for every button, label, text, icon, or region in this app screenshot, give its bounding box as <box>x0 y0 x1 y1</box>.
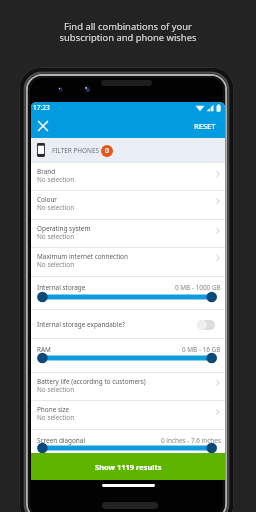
staticText: Maximum internet connection <box>37 252 128 261</box>
staticText: No selection <box>37 232 75 241</box>
button[interactable]: Brand <box>31 162 225 191</box>
staticText: Colour <box>37 195 58 204</box>
button[interactable]: Colour <box>31 190 225 218</box>
staticText: Phone size <box>37 405 70 414</box>
staticText: Find all combinations of your subscripti… <box>0 20 256 43</box>
button[interactable]: FILTER PHONES <box>31 138 225 162</box>
button[interactable]: Internal storage range slider <box>31 290 225 304</box>
staticText: No selection <box>37 175 75 184</box>
staticText: 0 MB - 16 GB <box>182 345 221 354</box>
staticText: Show 1119 results <box>95 462 162 472</box>
staticText: Internal storage <box>37 283 86 292</box>
staticText: Internal storage expandable? <box>37 320 125 329</box>
button[interactable]: RAM range slider <box>31 351 225 365</box>
button[interactable]: Close <box>31 114 55 138</box>
staticText: 17:23 <box>33 103 50 112</box>
button[interactable]: Internal storage expandable toggle <box>197 320 215 330</box>
button[interactable]: Screen diagonal range slider <box>31 441 225 455</box>
staticText: Operating system <box>37 224 91 233</box>
staticText: RESET <box>194 121 216 131</box>
staticText: No selection <box>37 203 75 212</box>
staticText: 0 MB - 1000 GB <box>175 283 221 292</box>
staticText: RAM <box>37 345 51 354</box>
staticText: Brand <box>37 167 56 176</box>
staticText: FILTER PHONES <box>52 146 99 155</box>
button[interactable]: Operating system <box>31 219 225 248</box>
button[interactable]: Battery life (according to customers) <box>31 372 225 400</box>
staticText: 0 <box>105 146 110 156</box>
staticText: No selection <box>37 413 75 422</box>
staticText: 0 inches - 7.6 inches <box>161 436 221 445</box>
staticText: Screen diagonal <box>37 436 86 445</box>
button[interactable]: Show 1119 results <box>31 453 225 480</box>
staticText: No selection <box>37 385 75 394</box>
button[interactable]: Maximum internet connection <box>31 247 225 275</box>
staticText: No selection <box>37 260 75 269</box>
button[interactable]: Phone size <box>31 400 225 429</box>
button[interactable]: RESET <box>185 114 225 138</box>
staticText: Battery life (according to customers) <box>37 377 146 386</box>
